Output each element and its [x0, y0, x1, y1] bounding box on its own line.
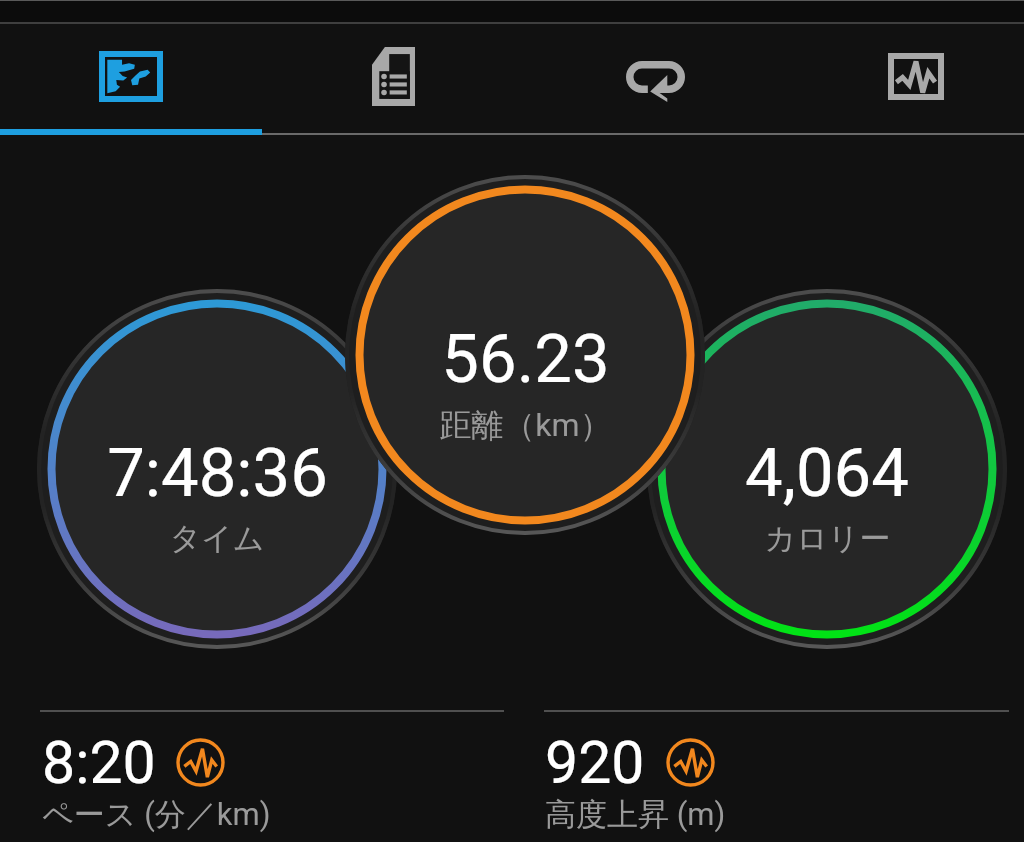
button[interactable]: 920 [541, 716, 1011, 842]
button[interactable]: 4,064 [647, 289, 1007, 649]
staticText: 56.23 [441, 320, 610, 399]
button[interactable]: 7:48:36 [37, 289, 397, 649]
staticText: 8:20 [42, 728, 156, 797]
staticText: 7:48:36 [107, 434, 328, 513]
staticText: カロリー [764, 519, 891, 558]
button[interactable]: Map [0, 23, 262, 129]
button[interactable]: 56.23 [345, 175, 705, 535]
staticText: 920 [545, 728, 645, 797]
button[interactable]: 8:20 [38, 716, 508, 842]
button[interactable]: Laps [524, 23, 786, 129]
staticText: タイム [169, 519, 265, 558]
button[interactable]: Details [262, 23, 524, 129]
staticText: 距離（km） [439, 405, 612, 445]
button[interactable]: Chart [786, 23, 1024, 129]
staticText: ペース (分／km) [42, 795, 271, 834]
staticText: 4,064 [745, 434, 909, 513]
staticText: 高度上昇 (m) [545, 795, 726, 834]
